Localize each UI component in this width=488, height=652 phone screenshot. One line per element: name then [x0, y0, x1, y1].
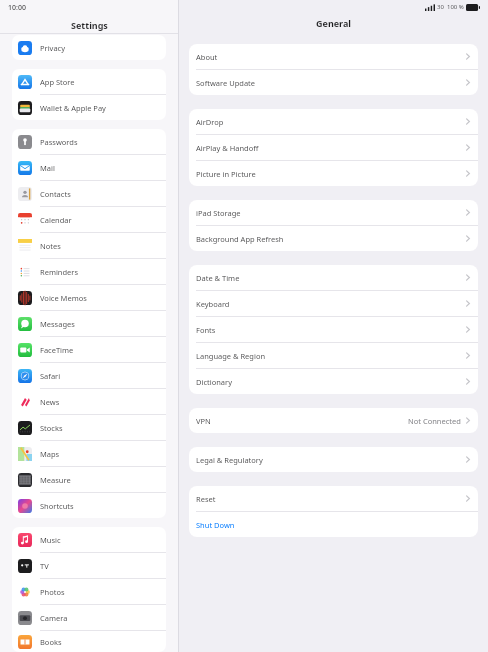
staticText: Reminders [40, 267, 79, 277]
button[interactable]: AirDrop [189, 109, 478, 134]
button[interactable]: Shortcuts [12, 493, 166, 518]
button[interactable]: Messages [12, 311, 166, 336]
button[interactable]: Wallet & Apple Pay [12, 95, 166, 120]
button[interactable]: iPad Storage [189, 200, 478, 225]
staticText: Voice Memos [40, 293, 87, 303]
staticText: Stocks [40, 423, 63, 433]
button[interactable]: AirPlay & Handoff [189, 135, 478, 160]
staticText: Books [40, 637, 62, 647]
button[interactable]: Privacy [12, 35, 166, 60]
staticText: App Store [40, 77, 75, 87]
staticText: Calendar [40, 215, 72, 225]
button[interactable]: Fonts [189, 317, 478, 342]
button[interactable]: Dictionary [189, 369, 478, 394]
button[interactable]: App Store [12, 69, 166, 94]
staticText: iPad Storage [196, 208, 241, 218]
staticText: Maps [40, 449, 60, 459]
staticText: VPN [196, 416, 211, 426]
button[interactable]: Calendar [12, 207, 166, 232]
button[interactable]: Photos [12, 579, 166, 604]
button[interactable]: Maps [12, 441, 166, 466]
staticText: Contacts [40, 189, 71, 199]
staticText: Picture in Picture [196, 169, 256, 179]
staticText: Shortcuts [40, 501, 74, 511]
staticText: General [316, 17, 352, 29]
staticText: 30 [437, 3, 444, 11]
staticText: Shut Down [196, 520, 235, 530]
staticText: Dictionary [196, 377, 232, 387]
button[interactable]: VPN [189, 408, 478, 433]
button[interactable]: Measure [12, 467, 166, 492]
button[interactable]: Picture in Picture [189, 161, 478, 186]
staticText: Messages [40, 319, 75, 329]
staticText: 100 % [447, 3, 464, 11]
button[interactable]: Notes [12, 233, 166, 258]
staticText: Background App Refresh [196, 234, 284, 244]
staticText: Not Connected [408, 416, 461, 426]
staticText: Passwords [40, 137, 78, 147]
button[interactable]: Camera [12, 605, 166, 630]
button[interactable]: Safari [12, 363, 166, 388]
staticText: Notes [40, 241, 61, 251]
button[interactable]: TV [12, 553, 166, 578]
button[interactable]: Contacts [12, 181, 166, 206]
staticText: Keyboard [196, 299, 230, 309]
button[interactable]: Software Update [189, 70, 478, 95]
button[interactable]: FaceTime [12, 337, 166, 362]
staticText: Privacy [40, 43, 66, 53]
button[interactable]: Background App Refresh [189, 226, 478, 251]
button[interactable]: Music [12, 527, 166, 552]
staticText: Music [40, 535, 61, 545]
staticText: Language & Region [196, 351, 266, 361]
staticText: Reset [196, 494, 216, 504]
staticText: Mail [40, 163, 55, 173]
staticText: About [196, 52, 218, 62]
staticText: 10:00 [8, 3, 26, 13]
button[interactable]: Date & Time [189, 265, 478, 290]
button[interactable]: Reset [189, 486, 478, 511]
staticText: FaceTime [40, 345, 74, 355]
button[interactable]: Stocks [12, 415, 166, 440]
button[interactable]: Keyboard [189, 291, 478, 316]
button[interactable]: Voice Memos [12, 285, 166, 310]
button[interactable]: Legal & Regulatory [189, 447, 478, 472]
staticText: Fonts [196, 325, 216, 335]
button[interactable]: Mail [12, 155, 166, 180]
staticText: Measure [40, 475, 71, 485]
button[interactable]: About [189, 44, 478, 69]
staticText: Safari [40, 371, 61, 381]
staticText: Date & Time [196, 273, 240, 283]
button[interactable]: Shut Down [189, 512, 478, 537]
staticText: Photos [40, 587, 65, 597]
staticText: TV [40, 561, 49, 571]
staticText: AirPlay & Handoff [196, 143, 259, 153]
staticText: Legal & Regulatory [196, 455, 263, 465]
staticText: News [40, 397, 60, 407]
button[interactable]: Passwords [12, 129, 166, 154]
staticText: AirDrop [196, 117, 224, 127]
button[interactable]: Language & Region [189, 343, 478, 368]
button[interactable]: Books [12, 631, 166, 652]
staticText: Wallet & Apple Pay [40, 103, 106, 113]
staticText: Settings [71, 19, 108, 31]
button[interactable]: News [12, 389, 166, 414]
button[interactable]: Reminders [12, 259, 166, 284]
staticText: Camera [40, 613, 68, 623]
staticText: Software Update [196, 78, 256, 88]
